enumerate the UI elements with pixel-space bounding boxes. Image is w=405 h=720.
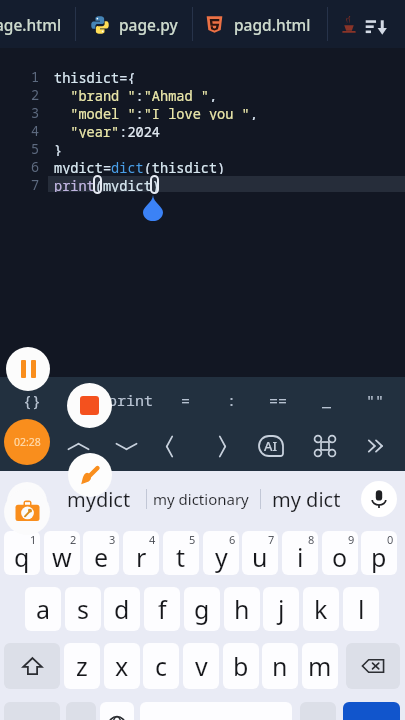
button[interactable]: 9	[322, 531, 358, 575]
button[interactable]: 1	[4, 531, 40, 575]
button[interactable]: _	[303, 377, 351, 423]
button[interactable]: z	[64, 643, 100, 689]
button[interactable]: 4	[123, 531, 159, 575]
button[interactable]: b	[223, 643, 259, 689]
button[interactable]: More	[354, 424, 398, 468]
staticText: age.html	[0, 14, 62, 35]
button[interactable]: pagd.html	[193, 0, 327, 48]
staticText: s	[77, 592, 89, 626]
button[interactable]: Command	[303, 424, 347, 468]
staticText: mydict	[67, 486, 131, 513]
button[interactable]: Move right	[200, 424, 244, 468]
button[interactable]: AI assistant	[249, 424, 293, 468]
button[interactable]: a	[25, 587, 61, 631]
button[interactable]: v	[183, 643, 219, 689]
button[interactable]: 0	[361, 531, 397, 575]
staticText: 6	[31, 158, 40, 174]
staticText: m	[308, 649, 332, 683]
staticText: 02:28	[14, 435, 41, 449]
button[interactable]: 6	[203, 531, 239, 575]
button[interactable]: h	[224, 587, 260, 631]
button[interactable]: Backspace	[346, 643, 400, 689]
button[interactable]: Sort	[365, 19, 388, 35]
button[interactable]: Enter	[343, 702, 400, 720]
button[interactable]: g	[184, 587, 220, 631]
button[interactable]: x	[104, 643, 140, 689]
staticText: mydict=dict(thisdict)	[54, 158, 226, 174]
staticText: my dictionary	[153, 489, 249, 509]
staticText: 8	[308, 532, 315, 547]
button[interactable]: Shift	[4, 643, 60, 689]
button[interactable]: ""	[351, 377, 399, 423]
staticText: z	[76, 649, 88, 683]
button[interactable]: my dictionary	[151, 477, 251, 521]
staticText: e	[94, 540, 109, 574]
staticText: d	[114, 592, 130, 626]
staticText: n	[272, 649, 288, 683]
button[interactable]: mydict	[56, 477, 141, 521]
staticText: 4	[149, 532, 156, 547]
button[interactable]: my dict	[266, 477, 346, 521]
staticText: 6	[229, 532, 236, 547]
button[interactable]: Draw	[68, 453, 112, 497]
button[interactable]: 7	[242, 531, 278, 575]
button[interactable]: c	[143, 643, 179, 689]
staticText: c	[155, 649, 168, 683]
staticText: x	[115, 649, 129, 683]
staticText: l	[358, 592, 365, 626]
button[interactable]: Scroll down	[104, 424, 148, 468]
staticText: 0	[387, 532, 394, 547]
staticText: u	[252, 540, 268, 574]
staticText: t	[176, 540, 186, 574]
staticText: _	[322, 390, 332, 410]
button[interactable]: print	[107, 377, 155, 423]
button[interactable]: 2	[44, 531, 80, 575]
staticText: p	[371, 540, 387, 574]
staticText: "year":2024	[54, 122, 161, 138]
button[interactable]: 5	[163, 531, 199, 575]
button[interactable]: n	[262, 643, 298, 689]
button[interactable]: page.py	[76, 0, 192, 48]
button[interactable]: 02:28	[4, 419, 50, 465]
button[interactable]: Pause recording	[6, 347, 50, 391]
button[interactable]: d	[104, 587, 140, 631]
staticText: {}	[23, 390, 42, 410]
staticText: o	[332, 540, 348, 574]
staticText: =	[181, 390, 191, 410]
staticText: "brand ":"Ahmad ",	[54, 86, 218, 102]
staticText: q	[14, 540, 30, 574]
button[interactable]: 8	[282, 531, 318, 575]
button[interactable]: j	[263, 587, 299, 631]
button[interactable]: age.html	[0, 0, 75, 48]
staticText: f	[158, 592, 167, 626]
staticText: pagd.html	[234, 14, 311, 35]
button[interactable]: k	[303, 587, 339, 631]
staticText: r	[136, 540, 147, 574]
button[interactable]: s	[65, 587, 101, 631]
button[interactable]: =	[162, 377, 210, 423]
button[interactable]: Voice input	[361, 481, 397, 517]
button[interactable]: m	[302, 643, 338, 689]
button[interactable]: Stop recording	[67, 383, 112, 428]
button[interactable]: Run Java	[342, 13, 356, 34]
staticText: y	[215, 540, 228, 574]
staticText: page.py	[119, 14, 178, 35]
staticText: AI	[264, 437, 278, 455]
staticText: 2	[70, 532, 77, 547]
button[interactable]: ==	[254, 377, 302, 423]
button[interactable]: Scroll up	[56, 424, 100, 468]
button[interactable]: Language	[100, 702, 134, 720]
button[interactable]: {}	[8, 377, 56, 423]
button[interactable]: Tools	[4, 489, 50, 535]
button[interactable]: l	[343, 587, 379, 631]
button[interactable]: f	[144, 587, 180, 631]
button[interactable]: Move left	[147, 424, 191, 468]
button[interactable]: 3	[83, 531, 119, 575]
staticText: :	[227, 390, 237, 410]
button[interactable]: :	[208, 377, 256, 423]
staticText: a	[36, 592, 51, 626]
